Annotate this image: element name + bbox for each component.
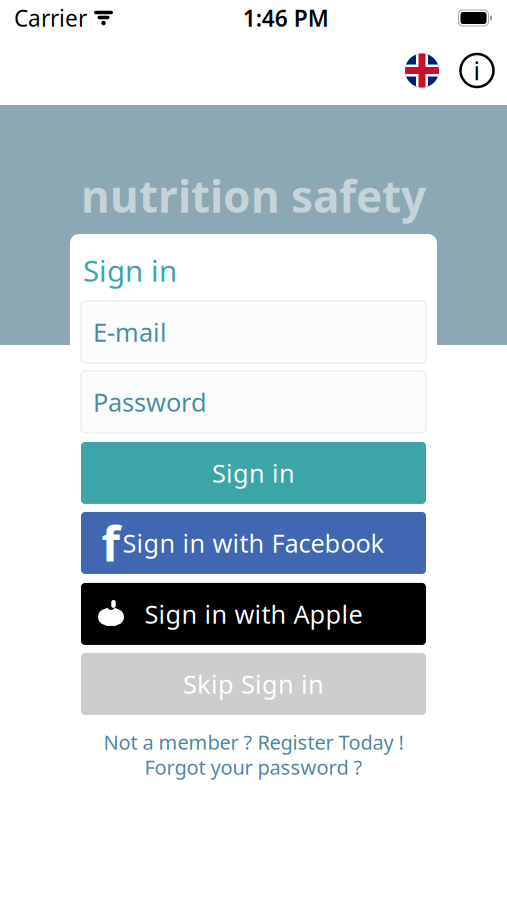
- button[interactable]: Sign in: [81, 442, 426, 504]
- staticText: Sign in with Facebook: [122, 526, 384, 560]
- staticText: E-mail: [93, 315, 167, 349]
- button[interactable]: Change language: [405, 53, 439, 87]
- staticText: Not a member ? Register Today !: [103, 729, 403, 755]
- button[interactable]: f: [81, 512, 426, 574]
- staticText: Password: [93, 385, 207, 419]
- staticText: i: [473, 54, 480, 87]
- button[interactable]: Not a member ? Register Today !: [70, 730, 437, 754]
- button[interactable]: Forgot your password ?: [70, 754, 437, 780]
- staticText: Carrier: [14, 3, 87, 33]
- staticText: nutrition safety: [81, 167, 426, 225]
- staticText: Sign in: [83, 251, 177, 290]
- staticText: Skip Sign in: [183, 667, 324, 701]
- staticText: Sign in: [212, 456, 295, 490]
- staticText: f: [101, 511, 120, 575]
- staticText: Sign in with Apple: [144, 597, 362, 631]
- button[interactable]: Information: [460, 53, 494, 87]
- staticText: Forgot your password ?: [144, 754, 362, 780]
- button[interactable]: Skip Sign in: [81, 653, 426, 715]
- button[interactable]: Sign in with Apple: [81, 583, 426, 645]
- staticText: 1:46 PM: [243, 3, 329, 33]
